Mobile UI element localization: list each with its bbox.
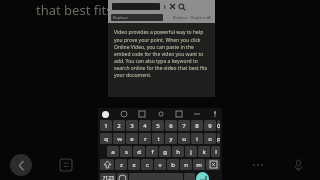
button[interactable]: a: [107, 146, 119, 157]
button[interactable]: 8: [191, 120, 203, 131]
staticText: v: [158, 161, 162, 169]
button[interactable]: ?123: [100, 173, 116, 180]
staticText: p: [217, 135, 220, 143]
button[interactable]: Stickers: [58, 157, 74, 173]
staticText: 8: [195, 122, 199, 130]
button[interactable]: f: [146, 146, 158, 157]
button[interactable]: p: [217, 133, 220, 144]
button[interactable]: Replace All: [191, 15, 212, 20]
button[interactable]: 6: [165, 120, 177, 131]
staticText: b: [171, 161, 175, 169]
button[interactable]: Emoji: [117, 173, 128, 180]
button[interactable]: Shift: [100, 159, 114, 170]
staticText: 6: [169, 122, 173, 130]
button[interactable]: t: [152, 133, 164, 144]
button[interactable]: Clipboard: [176, 111, 182, 117]
button[interactable]: 7: [178, 120, 190, 131]
button[interactable]: l: [211, 146, 220, 157]
button[interactable]: Stickers: [121, 111, 127, 117]
button[interactable]: m: [193, 159, 205, 170]
staticText: a: [111, 148, 115, 156]
button[interactable]: Close: [169, 3, 176, 10]
staticText: 9: [208, 122, 212, 130]
button[interactable]: Previous: [163, 4, 169, 10]
staticText: 0: [217, 122, 220, 130]
button[interactable]: h: [172, 146, 184, 157]
button[interactable]: GIF: [139, 111, 145, 117]
staticText: m: [196, 161, 202, 169]
button[interactable]: b: [167, 159, 179, 170]
button[interactable]: o: [204, 133, 216, 144]
staticText: f: [151, 148, 154, 156]
button[interactable]: c: [141, 159, 153, 170]
button[interactable]: g: [159, 146, 171, 157]
button[interactable]: d: [133, 146, 145, 157]
button[interactable]: s: [120, 146, 132, 157]
staticText: w: [117, 135, 122, 143]
staticText: u: [182, 135, 186, 143]
staticText: r: [144, 135, 147, 143]
button[interactable]: Enter: [196, 172, 209, 180]
staticText: o: [208, 135, 212, 143]
button[interactable]: 5: [152, 120, 164, 131]
button[interactable]: k: [198, 146, 210, 157]
staticText: ?123: [103, 175, 114, 180]
button[interactable]: x: [128, 159, 140, 170]
staticText: 3: [130, 122, 134, 130]
button[interactable]: .: [184, 173, 195, 180]
button[interactable]: n: [180, 159, 192, 170]
button[interactable]: Replace: [111, 14, 163, 21]
button[interactable]: More options: [250, 157, 266, 173]
staticText: 4: [143, 122, 147, 130]
staticText: j: [190, 148, 192, 156]
staticText: e: [130, 135, 134, 143]
button[interactable]: 9: [204, 120, 216, 131]
staticText: k: [202, 148, 206, 156]
button[interactable]: Settings: [158, 111, 164, 117]
button[interactable]: v: [154, 159, 166, 170]
button[interactable]: 1: [100, 120, 112, 131]
staticText: q: [104, 135, 108, 143]
button[interactable]: Voice input: [212, 111, 218, 117]
button[interactable]: Backspace: [206, 159, 220, 170]
staticText: 5: [156, 122, 160, 130]
staticText: l: [215, 148, 217, 156]
button[interactable]: Search: [178, 3, 186, 11]
button[interactable]: j: [185, 146, 197, 157]
button[interactable]: 3: [126, 120, 138, 131]
button[interactable]: 4: [139, 120, 151, 131]
staticText: h: [176, 148, 180, 156]
button[interactable]: More: [194, 111, 200, 117]
button[interactable]: z: [115, 159, 127, 170]
staticText: c: [146, 161, 149, 169]
staticText: d: [137, 148, 141, 156]
staticText: i: [196, 135, 198, 143]
staticText: t: [157, 135, 160, 143]
button[interactable]: 2: [113, 120, 125, 131]
staticText: 2: [117, 122, 121, 130]
staticText: s: [125, 148, 128, 156]
button[interactable]: y: [165, 133, 177, 144]
staticText: g: [163, 148, 167, 156]
button[interactable]: q: [100, 133, 112, 144]
button[interactable]: u: [178, 133, 190, 144]
staticText: y: [169, 135, 173, 143]
button[interactable]: r: [139, 133, 151, 144]
staticText: z: [120, 161, 123, 169]
staticText: 7: [182, 122, 186, 130]
button[interactable]: Replace: [173, 15, 188, 20]
button[interactable]: w: [113, 133, 125, 144]
button[interactable]: 0: [217, 120, 220, 131]
button[interactable]: Back: [10, 154, 32, 176]
button[interactable]: Voice search: [290, 157, 306, 173]
staticText: 1: [104, 122, 108, 130]
button[interactable]: e: [126, 133, 138, 144]
staticText: Replace: [113, 15, 128, 20]
button[interactable]: Google: [102, 111, 109, 118]
staticText: that best fits y: [36, 1, 123, 19]
staticText: Video provides a powerful way to help yo…: [114, 29, 210, 78]
button[interactable]: [112, 3, 160, 10]
button[interactable]: i: [191, 133, 203, 144]
